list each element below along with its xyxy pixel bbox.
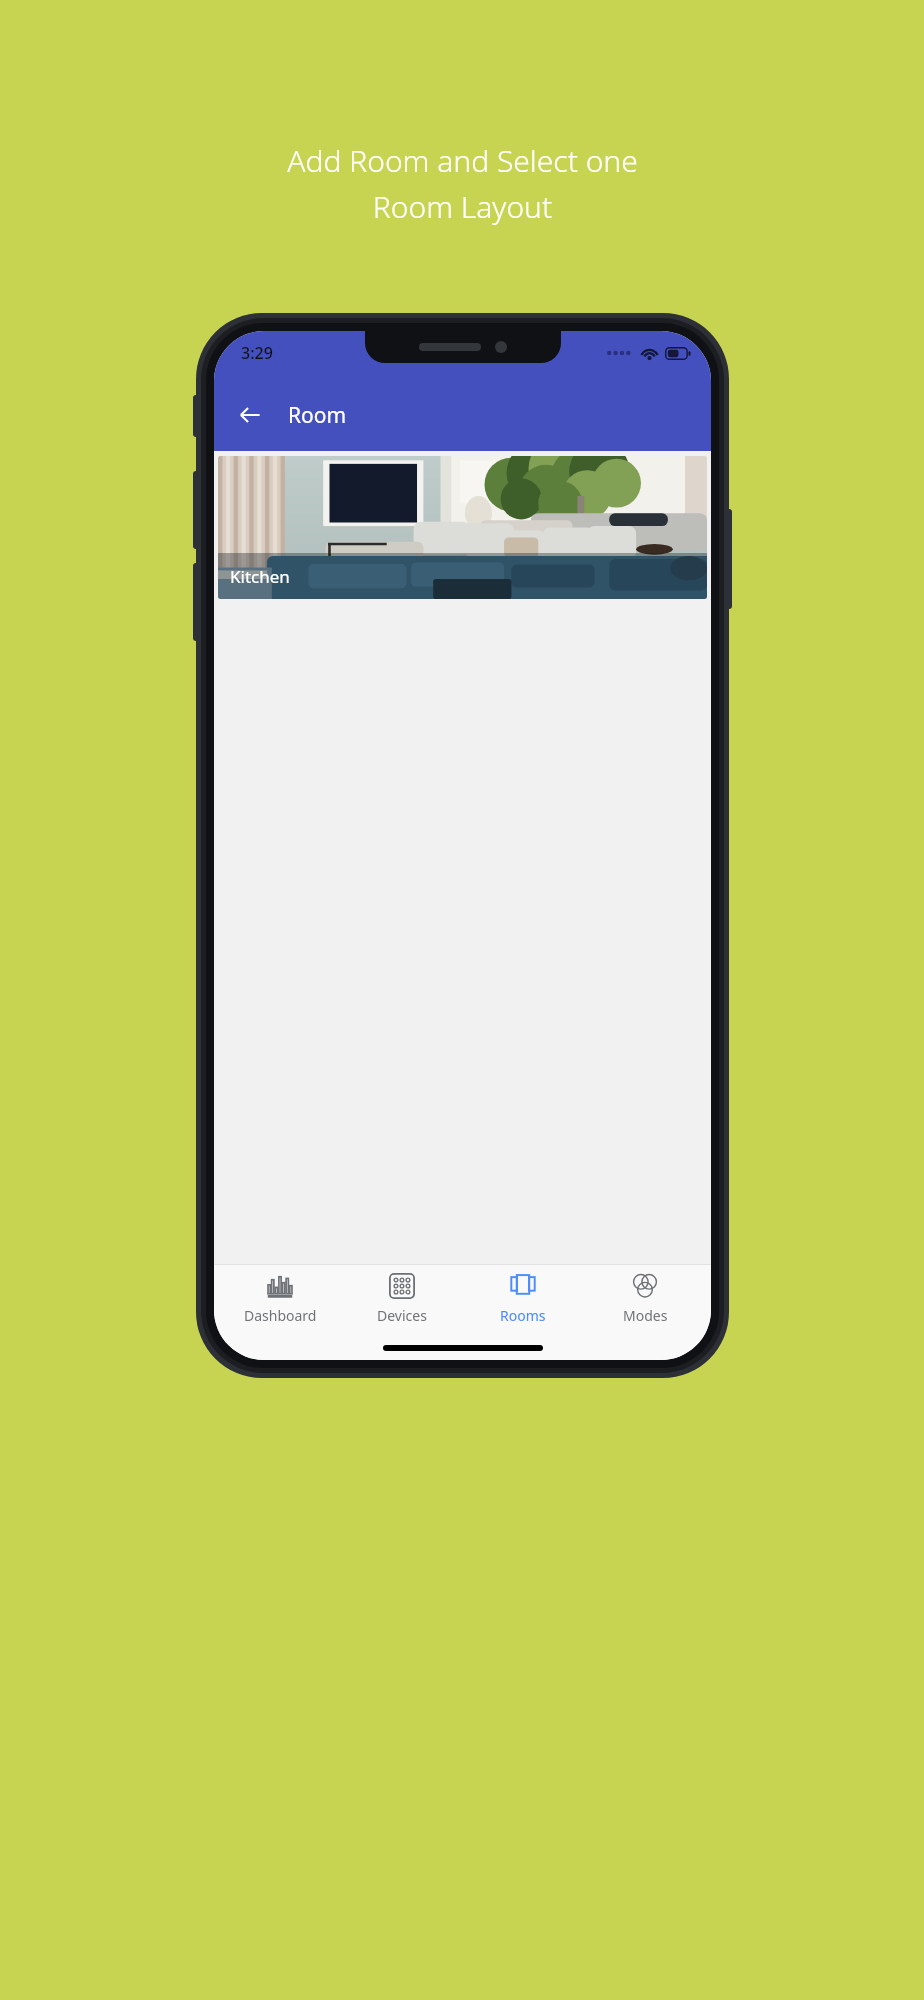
button[interactable]: Devices [347, 1264, 457, 1334]
button[interactable]: Rooms [468, 1264, 578, 1334]
staticText: Dashboard [244, 1306, 317, 1325]
button[interactable]: Dashboard [225, 1264, 335, 1334]
staticText: Modes [623, 1306, 668, 1325]
button[interactable]: Back [228, 393, 272, 437]
button[interactable]: Kitchen [218, 456, 707, 599]
button[interactable]: Modes [590, 1264, 700, 1334]
staticText: Room [288, 401, 347, 430]
staticText: Kitchen [230, 565, 290, 588]
staticText: Rooms [500, 1306, 546, 1325]
staticText: Add Room and Select one Room Layout [287, 140, 638, 227]
staticText: 3:29 [241, 342, 273, 364]
staticText: Devices [377, 1306, 427, 1325]
